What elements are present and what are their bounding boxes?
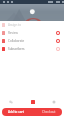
- staticText: Add to cart: [8, 110, 24, 114]
- button[interactable]: Add to cart: [2, 108, 62, 116]
- staticText: Checkout: [42, 110, 56, 114]
- button[interactable]: Tasks: [22, 95, 43, 108]
- button[interactable]: Review: [0, 29, 64, 37]
- staticText: Subscribers: [8, 47, 25, 51]
- button[interactable]: Subscribers: [0, 45, 64, 53]
- staticText: Review: [8, 31, 18, 35]
- button[interactable]: Collaborate: [0, 37, 64, 45]
- staticText: Assign to: [8, 23, 21, 27]
- button[interactable]: Assign to: [0, 21, 64, 29]
- button[interactable]: Profile: [43, 95, 64, 108]
- button[interactable]: Home: [0, 95, 22, 108]
- staticText: Collaborate: [8, 39, 25, 43]
